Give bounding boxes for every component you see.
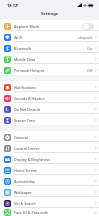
button[interactable]: Bluetooth (0, 42, 99, 53)
staticText: Siri & Search (14, 201, 36, 206)
button[interactable]: A (0, 153, 99, 164)
staticText: Screen Time (14, 118, 36, 123)
button[interactable]: Home Screen (0, 164, 99, 175)
button[interactable]: General (0, 131, 99, 142)
staticText: Off (87, 68, 93, 73)
button[interactable]: Screen Time (0, 114, 99, 125)
staticText: General (14, 135, 28, 140)
button[interactable]: Notifications (0, 81, 99, 92)
staticText: Accessibility (14, 179, 35, 184)
button[interactable]: Wi-Fi (0, 31, 99, 42)
button[interactable]: Wallpaper (0, 186, 99, 197)
button[interactable]: Siri & Search (0, 197, 99, 208)
other: Airplane (5, 24, 10, 29)
staticText: Control Centre (14, 146, 40, 151)
button[interactable]: Airplane (0, 20, 99, 31)
staticText: 18:12 (7, 3, 18, 8)
staticText: Wallpaper (14, 190, 32, 195)
staticText: Settings (41, 11, 58, 17)
staticText: Wi-Fi (14, 35, 23, 40)
staticText: A (7, 157, 10, 162)
button[interactable]: Do Not Disturb (0, 103, 99, 114)
staticText: Face ID & Passcode (14, 210, 48, 215)
staticText: Notifications (14, 85, 37, 90)
staticText: Do Not Disturb (14, 107, 41, 112)
staticText: shayaeb (78, 35, 93, 40)
button[interactable]: Accessibility (0, 175, 99, 186)
staticText: Airplane Mode (14, 24, 40, 29)
staticText: A (5, 158, 7, 162)
staticText: Display & Brightness (14, 157, 51, 162)
staticText: On (87, 46, 93, 51)
button[interactable]: Control Centre (0, 142, 99, 153)
staticText: Sounds & Haptics (14, 96, 45, 101)
staticText: Personal Hotspot (14, 68, 45, 73)
button[interactable]: Personal Hotspot (0, 64, 99, 75)
staticText: Home Screen (14, 168, 38, 173)
button[interactable]: Sounds & Haptics (0, 92, 99, 103)
button[interactable]: Face ID & Passcode (0, 208, 99, 216)
staticText: Mobile Data (14, 57, 36, 62)
button[interactable]: Mobile Data (0, 53, 99, 64)
staticText: Bluetooth (14, 46, 32, 51)
